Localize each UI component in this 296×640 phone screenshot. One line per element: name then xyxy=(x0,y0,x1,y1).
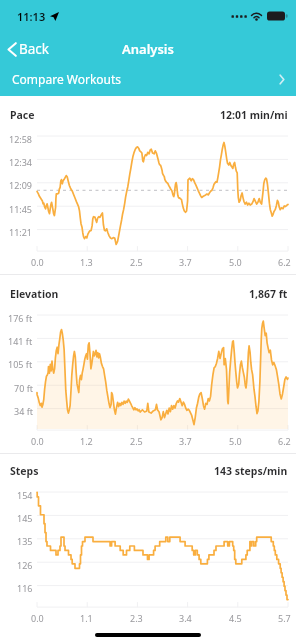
staticText: 135 xyxy=(17,535,33,547)
staticText: 1,867 ft xyxy=(249,287,288,301)
staticText: 11:45 xyxy=(9,203,33,215)
button[interactable]: Back xyxy=(0,34,60,64)
staticText: 0.0 xyxy=(31,435,44,447)
staticText: 1.3 xyxy=(80,256,93,268)
staticText: 11:13 xyxy=(17,9,46,24)
staticText: 70 ft xyxy=(14,382,33,394)
staticText: 11:21 xyxy=(9,226,33,238)
staticText: 4.5 xyxy=(229,612,242,624)
staticText: 1.2 xyxy=(80,435,93,447)
staticText: 6.2 xyxy=(278,435,291,447)
staticText: Compare Workouts xyxy=(12,71,122,87)
staticText: 2.5 xyxy=(130,435,143,447)
staticText: 3.7 xyxy=(179,435,192,447)
staticText: 12:34 xyxy=(9,156,33,168)
button[interactable]: Compare Workouts xyxy=(0,65,296,96)
staticText: 141 ft xyxy=(8,335,33,347)
staticText: 143 steps/min xyxy=(214,464,288,478)
staticText: 12:09 xyxy=(9,179,33,191)
staticText: 0.0 xyxy=(31,612,44,624)
staticText: Back xyxy=(19,40,50,58)
staticText: 126 xyxy=(17,559,33,571)
staticText: 3.4 xyxy=(179,612,192,624)
staticText: 34 ft xyxy=(14,405,33,417)
staticText: 154 xyxy=(17,489,33,501)
staticText: Analysis xyxy=(122,40,174,58)
staticText: 1.1 xyxy=(80,612,93,624)
staticText: 6.2 xyxy=(278,256,291,268)
staticText: 116 xyxy=(17,582,33,594)
staticText: 12:58 xyxy=(9,133,33,145)
staticText: 5.0 xyxy=(229,435,242,447)
staticText: 5.0 xyxy=(229,256,242,268)
staticText: 12:01 min/mi xyxy=(220,108,288,122)
staticText: 2.5 xyxy=(130,256,143,268)
staticText: 2.3 xyxy=(130,612,143,624)
staticText: Steps xyxy=(10,464,39,478)
staticText: 5.7 xyxy=(278,612,291,624)
staticText: 3.7 xyxy=(179,256,192,268)
staticText: 105 ft xyxy=(8,358,33,370)
staticText: Pace xyxy=(10,108,35,122)
staticText: 0.0 xyxy=(31,256,44,268)
staticText: 145 xyxy=(17,512,33,524)
staticText: 176 ft xyxy=(8,312,33,324)
staticText: Elevation xyxy=(10,287,59,301)
